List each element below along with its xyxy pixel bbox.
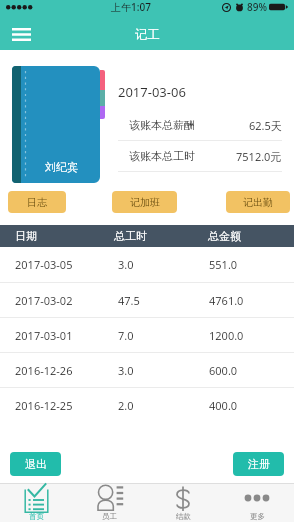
staticText: 退出 xyxy=(25,457,47,471)
staticText: 日期 xyxy=(15,229,37,243)
staticText: 1200.0 xyxy=(209,328,244,343)
button[interactable]: 首页 xyxy=(0,484,73,522)
staticText: 2016-12-26 xyxy=(15,363,73,378)
staticText: 600.0 xyxy=(209,363,238,378)
staticText: 首页 xyxy=(29,512,44,521)
staticText: 62.5天 xyxy=(249,118,282,133)
staticText: 注册 xyxy=(248,457,270,471)
staticText: 2017-03-06 xyxy=(118,83,186,101)
staticText: 2016-12-25 xyxy=(15,398,73,413)
staticText: 89% xyxy=(247,0,267,14)
staticText: 员工 xyxy=(102,512,117,521)
staticText: 该账本总薪酬 xyxy=(129,118,195,132)
staticText: 更多 xyxy=(250,512,265,521)
staticText: 47.5 xyxy=(118,293,140,308)
staticText: 2017-03-05 xyxy=(15,257,73,272)
button[interactable]: 退出 xyxy=(10,452,61,476)
staticText: 总金额 xyxy=(208,229,241,243)
staticText: 记工 xyxy=(135,27,160,43)
staticText: 3.0 xyxy=(118,363,134,378)
button[interactable]: 2016-12-25 xyxy=(0,388,294,422)
button[interactable]: Menu xyxy=(4,20,38,48)
staticText: 2.0 xyxy=(118,398,134,413)
staticText: 该账本总工时 xyxy=(129,149,195,163)
button[interactable]: 更多 xyxy=(220,484,294,522)
staticText: 4761.0 xyxy=(209,293,244,308)
button[interactable]: 注册 xyxy=(233,452,284,476)
staticText: 日志 xyxy=(27,196,47,209)
staticText: 记出勤 xyxy=(243,196,273,209)
button[interactable]: 2016-12-26 xyxy=(0,353,294,387)
staticText: 7512.0元 xyxy=(236,149,282,164)
staticText: 7.0 xyxy=(118,328,134,343)
button[interactable]: 日志 xyxy=(8,191,66,213)
button[interactable]: 结款 xyxy=(146,484,220,522)
staticText: 551.0 xyxy=(209,257,238,272)
button[interactable]: 2017-03-05 xyxy=(0,247,294,282)
button[interactable]: 2017-03-01 xyxy=(0,318,294,352)
staticText: 3.0 xyxy=(118,257,134,272)
staticText: 上午1:07 xyxy=(111,0,151,14)
button[interactable]: 记出勤 xyxy=(226,191,290,213)
staticText: 结款 xyxy=(176,512,191,521)
staticText: 2017-03-01 xyxy=(15,328,73,343)
button[interactable]: 记加班 xyxy=(112,191,177,213)
staticText: 记加班 xyxy=(130,196,160,209)
button[interactable]: 员工 xyxy=(73,484,146,522)
staticText: 总工时 xyxy=(114,229,147,243)
button[interactable]: 2017-03-02 xyxy=(0,283,294,317)
staticText: 2017-03-02 xyxy=(15,293,73,308)
staticText: 刘纪宾 xyxy=(45,160,78,174)
staticText: 400.0 xyxy=(209,398,238,413)
